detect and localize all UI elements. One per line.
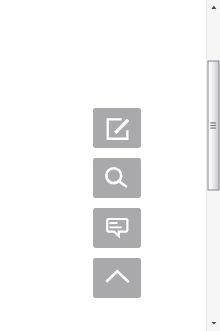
button[interactable]: Scroll to top: [93, 258, 141, 298]
button[interactable]: Search: [93, 158, 141, 198]
button[interactable]: Scroll thumb: [208, 61, 219, 190]
button[interactable]: Messages: [93, 208, 141, 248]
button[interactable]: Compose: [93, 108, 141, 148]
